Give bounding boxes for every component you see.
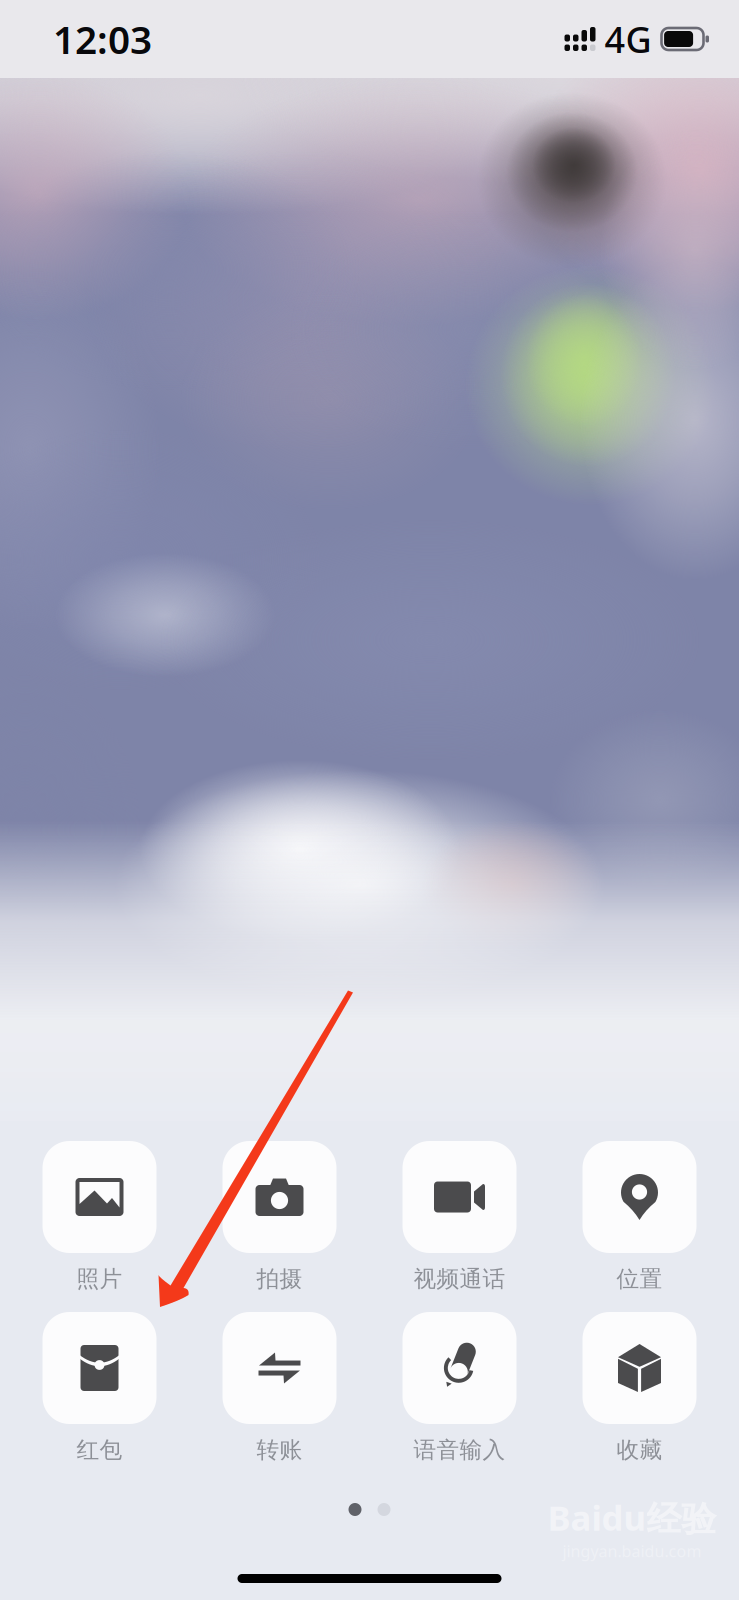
staticText: 照片 (76, 1265, 122, 1293)
staticText: 转账 (256, 1436, 302, 1464)
staticText: 4G (604, 15, 651, 63)
staticText: 12:03 (53, 13, 152, 65)
staticText: Baidu经验 (547, 1494, 716, 1540)
staticText: 拍摄 (256, 1265, 302, 1293)
staticText: 位置 (616, 1265, 662, 1293)
button[interactable]: 收藏 (549, 1311, 729, 1465)
button[interactable]: 视频通话 (369, 1140, 549, 1294)
button[interactable]: 转账 (189, 1311, 369, 1465)
staticText: 语音输入 (413, 1436, 505, 1464)
button[interactable]: 红包 (9, 1311, 189, 1465)
button[interactable]: 位置 (549, 1140, 729, 1294)
staticText: 红包 (76, 1436, 122, 1464)
button[interactable]: 照片 (9, 1140, 189, 1294)
staticText: 视频通话 (413, 1265, 505, 1293)
button[interactable]: 拍摄 (189, 1140, 369, 1294)
button[interactable]: 语音输入 (369, 1311, 549, 1465)
staticText: 收藏 (616, 1436, 662, 1464)
